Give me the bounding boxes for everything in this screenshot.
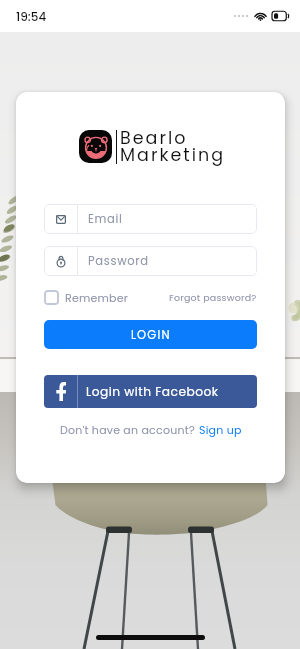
button[interactable]: Password xyxy=(44,246,257,276)
button[interactable]: Login with Facebook xyxy=(44,375,257,408)
staticText: LOGIN xyxy=(131,327,171,343)
button[interactable]: Forgot password? xyxy=(169,291,257,304)
staticText: Login with Facebook xyxy=(86,383,219,400)
staticText: Password xyxy=(88,253,149,269)
staticText: Bearlo Marketing xyxy=(120,126,226,167)
staticText: Email xyxy=(88,211,123,227)
staticText: 19:54 xyxy=(16,8,47,25)
staticText: Don't have an account? xyxy=(60,422,199,437)
button[interactable]: Remember xyxy=(44,290,129,305)
staticText: Remember xyxy=(65,290,129,305)
button[interactable]: Email xyxy=(44,204,257,234)
button[interactable]: Sign up xyxy=(199,422,242,437)
button[interactable]: LOGIN xyxy=(44,320,257,349)
